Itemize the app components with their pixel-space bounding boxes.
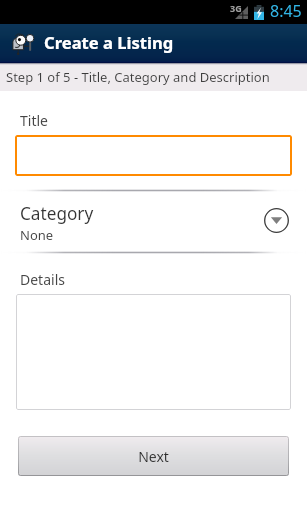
staticText: Details: [20, 270, 65, 289]
button[interactable]: [16, 294, 291, 410]
staticText: Step 1 of 5 - Title, Category and Descri…: [6, 68, 270, 86]
staticText: Create a Listing: [44, 31, 174, 54]
button[interactable]: Open category picker: [264, 208, 289, 233]
staticText: Category: [20, 202, 94, 225]
staticText: 8:45: [270, 0, 302, 22]
staticText: None: [20, 226, 54, 244]
button[interactable]: Next: [18, 436, 289, 476]
button[interactable]: Category: [0, 192, 307, 251]
other: App home: [12, 33, 34, 55]
staticText: Next: [138, 447, 169, 466]
staticText: 3G: [230, 2, 242, 14]
button[interactable]: App home: [0, 24, 307, 63]
button[interactable]: [15, 135, 292, 176]
staticText: Title: [20, 111, 48, 130]
